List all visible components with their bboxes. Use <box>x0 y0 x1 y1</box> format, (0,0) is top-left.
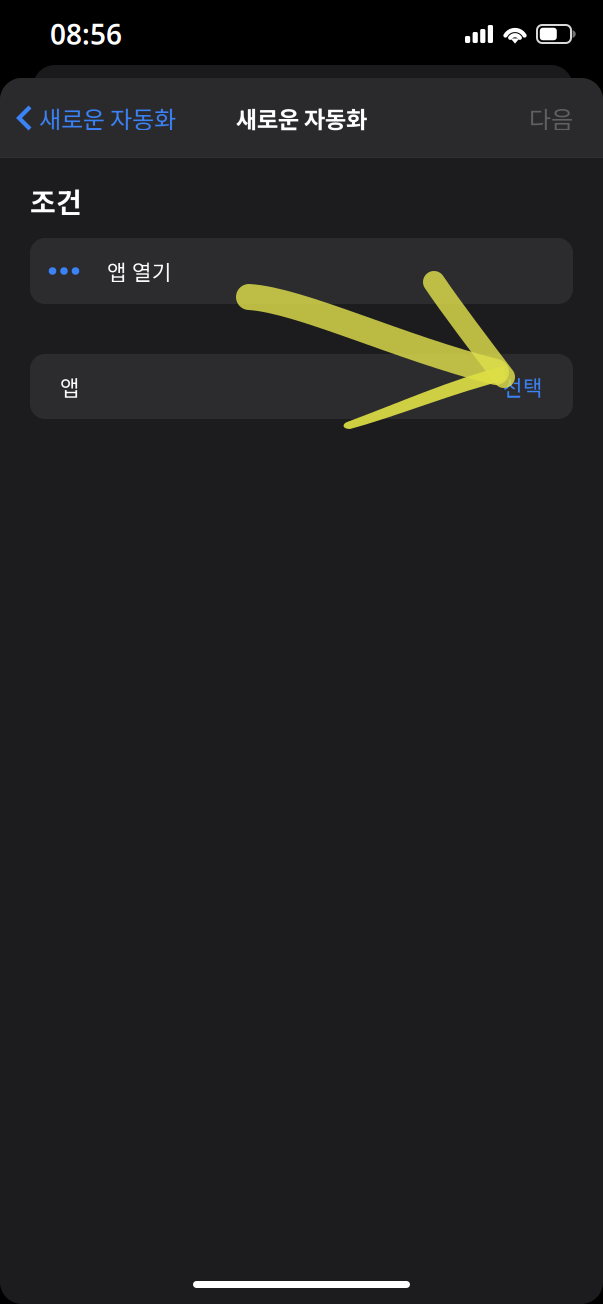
button[interactable]: 다음 <box>529 89 603 147</box>
staticText: 다음 <box>529 101 573 135</box>
staticText: 새로운 자동화 <box>39 101 176 135</box>
button[interactable]: 앱 열기 <box>30 238 573 304</box>
staticText: 앱 열기 <box>107 256 172 286</box>
button[interactable]: 앱 <box>30 354 573 419</box>
staticText: 앱 <box>60 371 80 402</box>
staticText: 조건 <box>30 180 82 221</box>
staticText: 08:56 <box>50 15 122 53</box>
staticText: 선택 <box>503 371 543 402</box>
button[interactable]: 새로운 자동화 <box>0 89 176 147</box>
staticText: 새로운 자동화 <box>236 101 367 135</box>
